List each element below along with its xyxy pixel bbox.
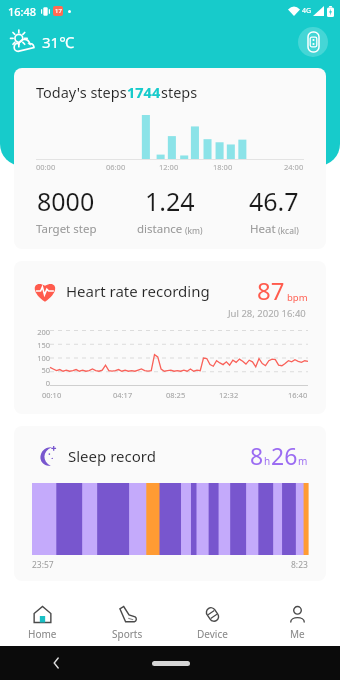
staticText: Sleep record <box>68 446 156 466</box>
staticText: 04:17 <box>113 390 133 400</box>
staticText: Me <box>290 627 305 641</box>
button[interactable]: Today's steps <box>14 68 326 249</box>
staticText: 8000 <box>37 184 95 218</box>
staticText: 16:48 <box>8 4 37 19</box>
staticText: 8 <box>250 440 264 471</box>
staticText: 1.24 <box>145 184 195 218</box>
staticText: 150 <box>28 340 50 350</box>
staticText: Jul 28, 2020 16:40 <box>228 307 306 320</box>
staticText: 1744 <box>127 82 161 102</box>
button[interactable]: Home <box>0 600 85 646</box>
staticText: 18:00 <box>213 162 233 172</box>
staticText: 87 <box>257 274 285 307</box>
staticText: 00:10 <box>42 390 62 400</box>
staticText: 24:00 <box>284 162 304 172</box>
staticText: m <box>298 454 308 468</box>
staticText: Heat <box>250 221 276 237</box>
staticText: 08:25 <box>166 390 186 400</box>
staticText: Home <box>28 627 57 641</box>
staticText: Sports <box>112 627 143 641</box>
staticText: 4G <box>302 6 312 16</box>
staticText: bpm <box>287 291 308 304</box>
staticText: 50 <box>28 365 50 375</box>
staticText: 12:32 <box>219 390 239 400</box>
staticText: 06:00 <box>106 162 126 172</box>
staticText: 12:00 <box>159 162 179 172</box>
staticText: 0 <box>28 378 50 388</box>
staticText: distance <box>137 221 183 237</box>
staticText: 8:23 <box>291 559 308 571</box>
staticText: Target step <box>36 221 97 237</box>
staticText: 100 <box>28 353 50 363</box>
staticText: 200 <box>28 327 50 337</box>
button[interactable]: Me <box>255 600 340 646</box>
button[interactable]: Heart rate recording <box>14 261 326 414</box>
staticText: 23:57 <box>32 559 54 571</box>
staticText: (km) <box>185 225 203 237</box>
staticText: 26 <box>271 440 298 471</box>
staticText: (kcal) <box>278 225 299 237</box>
staticText: 31℃ <box>42 32 75 52</box>
staticText: 46.7 <box>249 184 299 218</box>
staticText: Device <box>197 627 228 641</box>
button[interactable]: Device <box>170 600 255 646</box>
staticText: 16:40 <box>288 390 308 400</box>
button[interactable]: Sports <box>85 600 170 646</box>
button[interactable]: Sleep record <box>14 426 326 581</box>
staticText: Today's steps <box>36 82 127 102</box>
staticText: h <box>264 454 271 468</box>
staticText: Heart rate recording <box>66 281 210 301</box>
button[interactable]: My device <box>298 27 328 57</box>
staticText: 17 <box>55 7 62 15</box>
staticText: 00:00 <box>36 162 56 172</box>
staticText: steps <box>161 82 198 102</box>
